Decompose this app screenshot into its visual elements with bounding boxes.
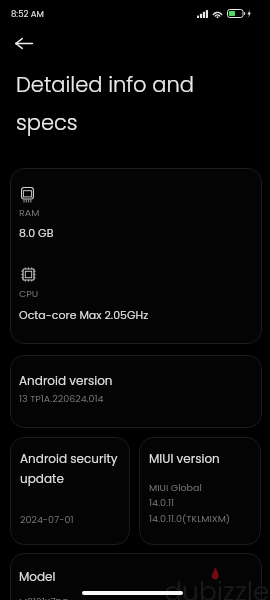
staticText: MIUI version	[149, 450, 220, 467]
button[interactable]: Android version	[10, 355, 262, 428]
staticText: MIUI Global 14.0.11 14.0.11.0(TKLMIXM)	[149, 481, 231, 526]
staticText: 2024-07-01	[20, 513, 74, 526]
staticText: Model	[19, 568, 56, 585]
button[interactable]: Model	[10, 553, 262, 600]
staticText: Octa-core Max 2.05GHz	[19, 307, 149, 322]
staticText: 13 TP1A.220624.014	[19, 392, 104, 405]
button[interactable]: RAM	[10, 168, 262, 344]
staticText: 8.0 GB	[19, 225, 54, 240]
staticText: Android security update	[20, 450, 122, 487]
staticText: 8:52 AM	[11, 8, 44, 20]
staticText: M2101K7BG	[19, 595, 69, 600]
button[interactable]: Android security update	[10, 437, 130, 545]
button[interactable]: Back	[8, 27, 40, 59]
staticText: RAM	[19, 206, 40, 219]
staticText: Android version	[19, 372, 113, 389]
staticText: CPU	[19, 287, 39, 300]
staticText: Detailed info and specs	[16, 70, 216, 137]
button[interactable]: MIUI version	[139, 437, 261, 545]
staticText: dubizzle	[164, 573, 270, 600]
